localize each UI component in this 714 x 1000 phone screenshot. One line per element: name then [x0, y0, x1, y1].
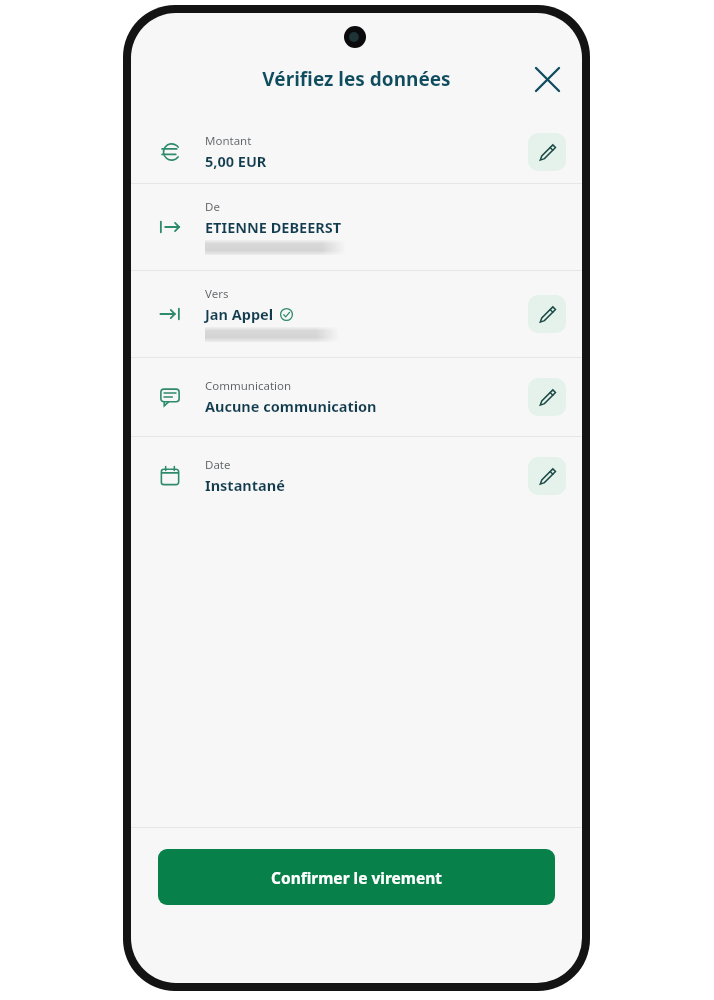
staticText: Date [205, 457, 231, 473]
staticText: Aucune communication [205, 396, 377, 416]
staticText: Instantané [205, 475, 285, 495]
staticText: Confirmer le virement [271, 867, 443, 888]
button[interactable]: Vers [131, 271, 582, 357]
staticText: Communication [205, 378, 292, 394]
staticText: Montant [205, 133, 252, 149]
staticText: Vérifiez les données [262, 66, 451, 92]
button[interactable]: Date [131, 437, 582, 515]
staticText: Jan Appel [205, 304, 274, 324]
button[interactable]: Modifier Date [528, 457, 566, 495]
button[interactable]: De [131, 184, 582, 270]
button[interactable]: Confirmer le virement [158, 849, 555, 905]
button[interactable]: Fermer [526, 58, 568, 100]
button[interactable]: Modifier Vers [528, 295, 566, 333]
button[interactable]: Communication [131, 358, 582, 436]
staticText: De [205, 199, 220, 215]
button[interactable]: Modifier Montant [528, 133, 566, 171]
button[interactable]: Modifier Communication [528, 378, 566, 416]
staticText: Vers [205, 286, 229, 302]
staticText: 5,00 EUR [205, 151, 267, 171]
staticText: ETIENNE DEBEERST [205, 217, 342, 237]
button[interactable]: Montant [131, 121, 582, 183]
